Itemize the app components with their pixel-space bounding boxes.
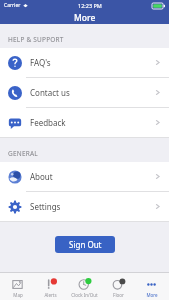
staticText: FAQ's bbox=[30, 57, 51, 68]
staticText: About bbox=[30, 171, 53, 182]
button[interactable]: Floor bbox=[102, 276, 135, 298]
staticText: Floor bbox=[113, 292, 124, 298]
button[interactable]: Contact us bbox=[0, 78, 169, 107]
staticText: Sign Out bbox=[69, 239, 102, 250]
button[interactable]: Map bbox=[1, 276, 34, 298]
button[interactable]: Sign Out bbox=[55, 236, 115, 253]
staticText: Map bbox=[13, 292, 23, 298]
button[interactable]: Feedback bbox=[0, 108, 169, 137]
staticText: GENERAL bbox=[8, 149, 38, 158]
staticText: Carrier bbox=[4, 2, 21, 9]
staticText: More bbox=[74, 12, 96, 24]
staticText: Feedback bbox=[30, 117, 66, 128]
staticText: Contact us bbox=[30, 87, 70, 98]
staticText: 12:23 PM bbox=[78, 2, 102, 9]
button[interactable]: Alerts bbox=[34, 276, 67, 298]
button[interactable]: Settings bbox=[0, 192, 169, 221]
staticText: Settings bbox=[30, 201, 61, 212]
staticText: HELP & SUPPORT bbox=[8, 35, 64, 44]
staticText: More bbox=[146, 292, 158, 298]
button[interactable]: About bbox=[0, 162, 169, 191]
staticText: Clock In/Out bbox=[71, 292, 98, 298]
button[interactable]: More bbox=[135, 276, 168, 298]
button[interactable]: FAQ's bbox=[0, 48, 169, 77]
staticText: Alerts bbox=[44, 292, 57, 298]
button[interactable]: Clock In/Out bbox=[68, 276, 101, 298]
